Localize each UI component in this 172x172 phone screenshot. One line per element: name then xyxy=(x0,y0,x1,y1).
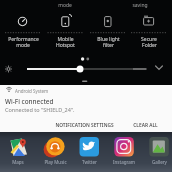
button[interactable] xyxy=(128,13,170,51)
staticText: Twitter xyxy=(82,159,97,165)
button[interactable] xyxy=(146,136,172,166)
button[interactable]: NOTIFICATION SETTINGS xyxy=(39,122,129,129)
button[interactable] xyxy=(76,136,102,166)
staticText: Blue light xyxy=(97,36,120,43)
staticText: Android System xyxy=(15,88,49,94)
staticText: Folder xyxy=(142,42,157,49)
staticText: filter xyxy=(103,42,114,49)
button[interactable] xyxy=(44,13,86,51)
staticText: CLEAR ALL xyxy=(133,122,158,129)
staticText: Connected to "SHIELD_24". xyxy=(5,106,75,113)
staticText: Maps xyxy=(12,159,24,165)
staticText: Secure xyxy=(141,36,157,43)
staticText: Performance xyxy=(8,36,39,43)
button[interactable] xyxy=(111,136,137,166)
staticText: Mobile xyxy=(57,36,74,43)
button[interactable] xyxy=(87,13,129,51)
staticText: Wi-Fi connected xyxy=(5,97,54,106)
staticText: mode xyxy=(58,2,72,9)
staticText: Instagram xyxy=(113,159,135,165)
staticText: Play Music xyxy=(44,159,67,165)
button[interactable] xyxy=(5,136,31,166)
staticText: Gallery xyxy=(152,159,167,165)
button[interactable] xyxy=(42,136,68,166)
staticText: Hotspot xyxy=(56,42,75,49)
staticText: saving xyxy=(132,2,148,9)
button[interactable] xyxy=(0,85,172,132)
button[interactable] xyxy=(2,13,44,51)
staticText: mode xyxy=(16,42,30,49)
button[interactable]: CLEAR ALL xyxy=(125,122,165,129)
staticText: NOTIFICATION SETTINGS xyxy=(55,122,114,129)
button[interactable] xyxy=(151,61,167,75)
button[interactable] xyxy=(24,62,152,76)
